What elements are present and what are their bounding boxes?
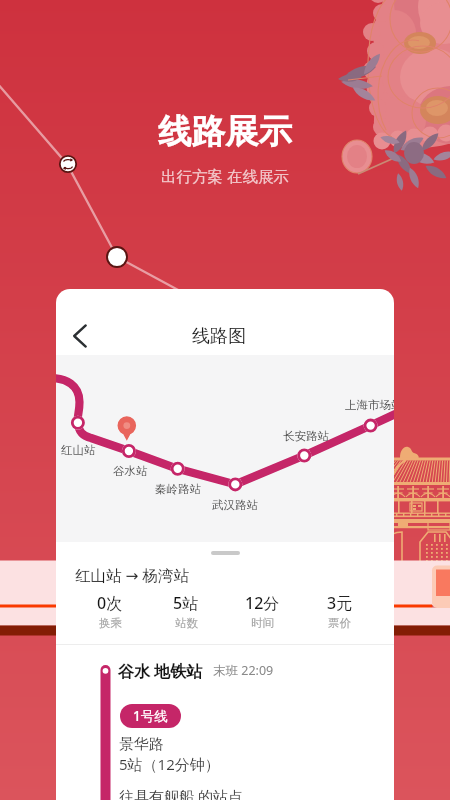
button[interactable]: 1号线 <box>120 704 181 728</box>
staticText: 0次 <box>97 592 123 614</box>
staticText: 线路展示 <box>158 111 292 153</box>
staticText: 红山站 → 杨湾站 <box>75 564 190 585</box>
staticText: 12分 <box>245 592 280 614</box>
staticText: 站数 <box>175 616 198 630</box>
staticText: 武汉路站 <box>212 498 258 512</box>
staticText: 3元 <box>327 592 353 614</box>
staticText: 谷水 地铁站 <box>118 660 203 682</box>
staticText: 1号线 <box>133 707 168 725</box>
staticText: 上海市场站 <box>345 398 394 412</box>
staticText: 秦岭路站 <box>155 482 201 496</box>
staticText: 谷水站 <box>113 464 148 478</box>
staticText: 时间 <box>251 616 274 630</box>
staticText: 红山站 <box>61 443 96 457</box>
staticText: 票价 <box>328 616 351 630</box>
button[interactable]: Back <box>57 314 101 358</box>
staticText: 往具有舰船 的站点 <box>119 786 243 800</box>
staticText: 景华路 <box>119 735 164 754</box>
staticText: 长安路站 <box>283 429 329 443</box>
staticText: 末班 22:09 <box>213 662 274 679</box>
staticText: 5站（12分钟） <box>119 754 220 774</box>
staticText: 换乘 <box>99 616 122 630</box>
staticText: 出行方案 在线展示 <box>161 165 290 186</box>
staticText: 线路图 <box>192 325 246 348</box>
staticText: 5站 <box>173 592 199 614</box>
